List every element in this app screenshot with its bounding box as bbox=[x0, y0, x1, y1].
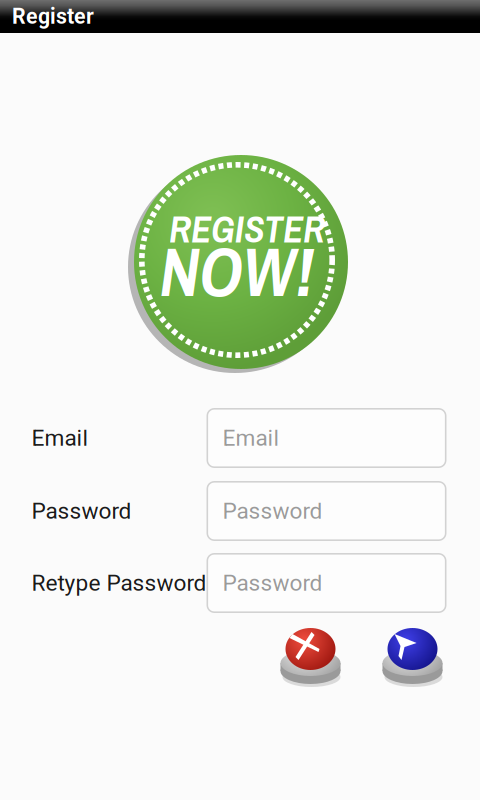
button[interactable]: Email bbox=[206, 408, 446, 468]
button[interactable]: Cancel bbox=[278, 622, 342, 692]
button[interactable]: Password bbox=[206, 553, 446, 613]
button[interactable]: Password bbox=[206, 481, 446, 541]
staticText: Password bbox=[222, 498, 322, 524]
staticText: Register bbox=[12, 4, 94, 29]
button[interactable]: Register Now bbox=[126, 151, 354, 379]
staticText: Password bbox=[31, 498, 131, 524]
staticText: Email bbox=[222, 425, 279, 451]
button[interactable]: Submit bbox=[380, 622, 444, 692]
staticText: Email bbox=[31, 425, 88, 451]
staticText: NOW! bbox=[159, 226, 314, 317]
staticText: REGISTER bbox=[169, 204, 325, 254]
staticText: Retype Password bbox=[31, 570, 206, 596]
staticText: Password bbox=[222, 570, 322, 596]
